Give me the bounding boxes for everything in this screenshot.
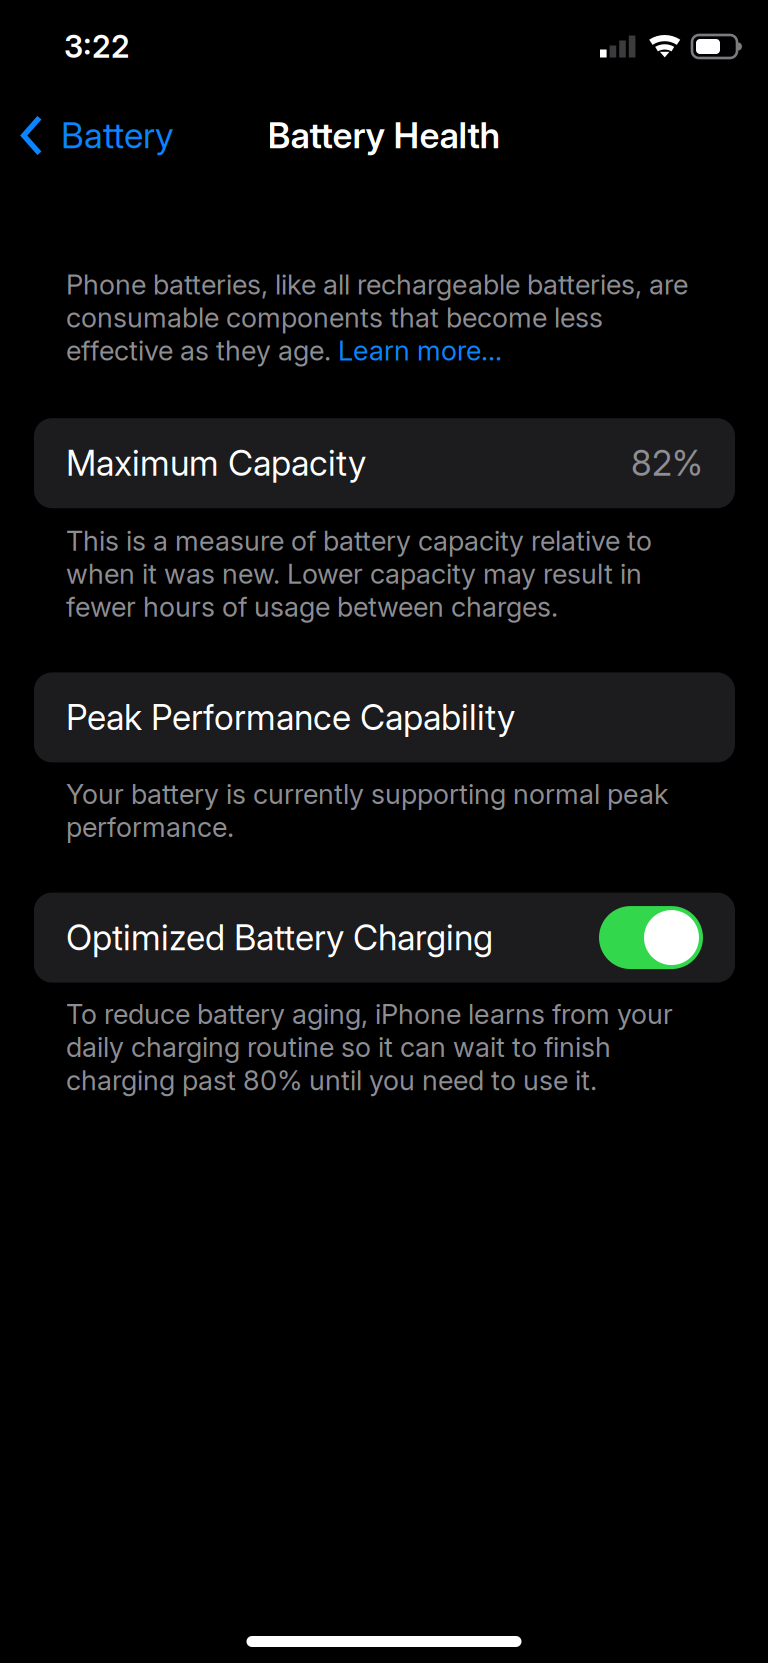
button[interactable]: Peak Performance Capability [34, 672, 735, 762]
staticText: 3:22 [64, 28, 130, 65]
button[interactable]: Maximum Capacity [34, 418, 735, 508]
staticText: Battery Health [267, 114, 500, 157]
staticText: Phone batteries, like all rechargeable b… [66, 268, 688, 367]
staticText: 82% [631, 442, 703, 484]
staticText: Your battery is currently supporting nor… [66, 777, 669, 843]
staticText: To reduce battery aging, iPhone learns f… [66, 998, 673, 1097]
button[interactable]: Battery [0, 109, 188, 162]
staticText: This is a measure of battery capacity re… [66, 524, 652, 623]
staticText: Peak Performance Capability [66, 696, 515, 738]
staticText: Battery [61, 114, 174, 157]
button[interactable]: Optimized Battery Charging [599, 906, 703, 969]
staticText: Optimized Battery Charging [66, 917, 493, 958]
staticText: Maximum Capacity [66, 442, 366, 484]
